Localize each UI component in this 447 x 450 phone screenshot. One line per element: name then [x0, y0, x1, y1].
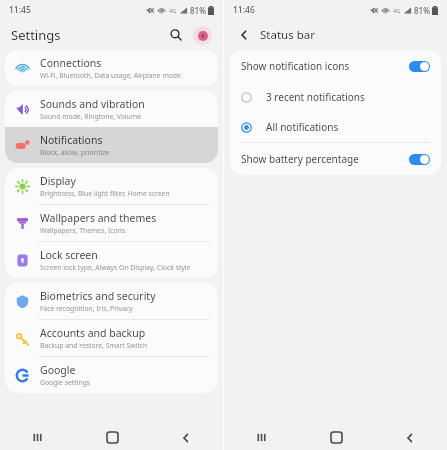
staticText: 11:45	[9, 4, 31, 16]
staticText: Biometrics and security	[40, 289, 156, 303]
staticText: Settings	[11, 26, 61, 44]
staticText: Notifications	[40, 133, 103, 147]
staticText: All notifications	[266, 120, 339, 134]
staticText: Sound mode, Ringtone, Volume	[40, 112, 142, 121]
staticText: Sounds and vibration	[40, 97, 145, 111]
staticText: Face recognition, Iris, Privacy	[40, 304, 133, 313]
staticText: Wallpapers, Themes, Icons	[40, 226, 126, 235]
button[interactable]: Wallpapers and themes	[5, 205, 218, 241]
button[interactable]: Google	[5, 357, 218, 393]
button[interactable]: Back	[234, 25, 254, 45]
staticText: Screen lock type, Always On Display, Clo…	[40, 263, 191, 272]
button[interactable]: Back	[149, 425, 223, 450]
button[interactable]: Notifications	[5, 127, 218, 163]
staticText: 81%	[414, 5, 430, 16]
staticText: Connections	[40, 56, 102, 70]
staticText: Show notification icons	[241, 59, 409, 73]
staticText: 4G	[393, 7, 401, 14]
staticText: Accounts and backup	[40, 326, 146, 340]
staticText: Google	[40, 363, 76, 377]
staticText: Backup and restore, Smart Switch	[40, 341, 148, 350]
staticText: Wi-Fi, Bluetooth, Data usage, Airplane m…	[40, 71, 181, 80]
button[interactable]: Display	[5, 168, 218, 204]
staticText: Brightness, Blue light filter, Home scre…	[40, 189, 170, 198]
button[interactable]: Home	[75, 425, 149, 450]
button[interactable]: Account	[193, 26, 212, 45]
button[interactable]: Home	[299, 425, 373, 450]
button[interactable]: All notifications	[230, 112, 441, 142]
button[interactable]: Back	[373, 425, 447, 450]
staticText: 3 recent notifications	[266, 90, 365, 104]
staticText: Google settings	[40, 378, 91, 387]
button[interactable]: Sounds and vibration	[5, 91, 218, 127]
button[interactable]: Biometrics and security	[5, 283, 218, 319]
staticText: 11:46	[233, 4, 255, 16]
button[interactable]: Show battery percentage	[230, 143, 441, 175]
button[interactable]: 3 recent notifications	[230, 82, 441, 112]
staticText: Display	[40, 174, 76, 188]
button[interactable]: Lock screen	[5, 242, 218, 278]
button[interactable]: Recents	[0, 425, 75, 450]
staticText: Show battery percentage	[241, 152, 409, 166]
staticText: 81%	[190, 5, 206, 16]
staticText: 4G	[169, 7, 177, 14]
button[interactable]: Recents	[224, 425, 299, 450]
staticText: Lock screen	[40, 248, 98, 262]
staticText: Wallpapers and themes	[40, 211, 157, 225]
button[interactable]: Show notification icons	[230, 50, 441, 82]
button[interactable]: Accounts and backup	[5, 320, 218, 356]
button[interactable]: Search	[165, 24, 187, 46]
staticText: Status bar	[260, 27, 315, 43]
button[interactable]: Connections	[5, 50, 218, 86]
staticText: Block, allow, prioritize	[40, 148, 110, 157]
